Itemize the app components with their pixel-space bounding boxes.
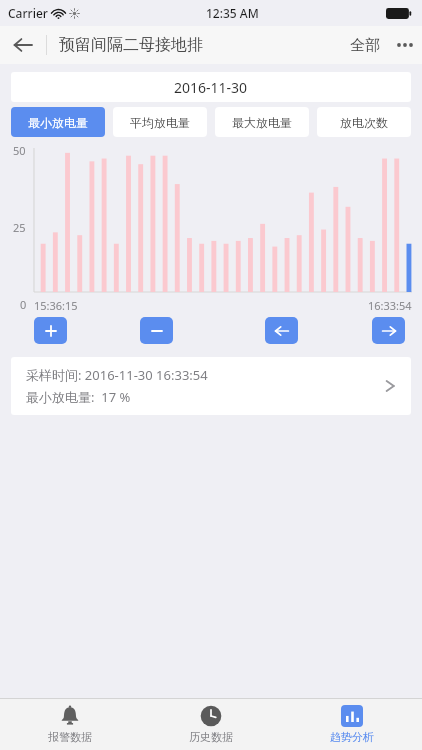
- staticText: 历史数据: [189, 730, 233, 744]
- staticText: 预留间隔二母接地排: [59, 35, 203, 55]
- staticText: 最小放电量: 17 %: [26, 388, 131, 406]
- staticText: Carrier: [8, 5, 48, 21]
- button[interactable]: 采样时间: 2016-11-30 16:33:54: [11, 357, 411, 415]
- button[interactable]: More options: [388, 26, 422, 64]
- button[interactable]: 最大放电量: [215, 107, 309, 137]
- button[interactable]: 趋势分析: [281, 699, 422, 750]
- button[interactable]: 报警数据: [0, 699, 140, 750]
- staticText: 最小放电量: [28, 115, 88, 130]
- button[interactable]: Back: [0, 26, 46, 64]
- staticText: 放电次数: [340, 115, 388, 130]
- staticText: 12:35 AM: [206, 5, 259, 21]
- staticText: 15:36:15: [34, 298, 78, 313]
- staticText: 全部: [350, 36, 380, 55]
- staticText: 50: [13, 143, 26, 158]
- button[interactable]: Zoom out: [140, 317, 173, 344]
- button[interactable]: 平均放电量: [113, 107, 207, 137]
- staticText: 16:33:54: [368, 298, 412, 313]
- staticText: 报警数据: [48, 730, 92, 744]
- staticText: 最大放电量: [232, 115, 292, 130]
- staticText: 2016-11-30: [174, 78, 248, 97]
- staticText: 25: [13, 220, 26, 235]
- button[interactable]: 2016-11-30: [11, 72, 411, 102]
- button[interactable]: 最小放电量: [11, 107, 105, 137]
- staticText: 平均放电量: [130, 115, 190, 130]
- button[interactable]: Next: [372, 317, 405, 344]
- button[interactable]: 全部: [344, 30, 386, 61]
- button[interactable]: Previous: [265, 317, 298, 344]
- staticText: 0: [20, 297, 27, 312]
- staticText: 趋势分析: [330, 730, 374, 744]
- button[interactable]: 历史数据: [140, 699, 281, 750]
- staticText: 采样时间: 2016-11-30 16:33:54: [26, 366, 208, 384]
- button[interactable]: Zoom in: [34, 317, 67, 344]
- button[interactable]: 放电次数: [317, 107, 411, 137]
